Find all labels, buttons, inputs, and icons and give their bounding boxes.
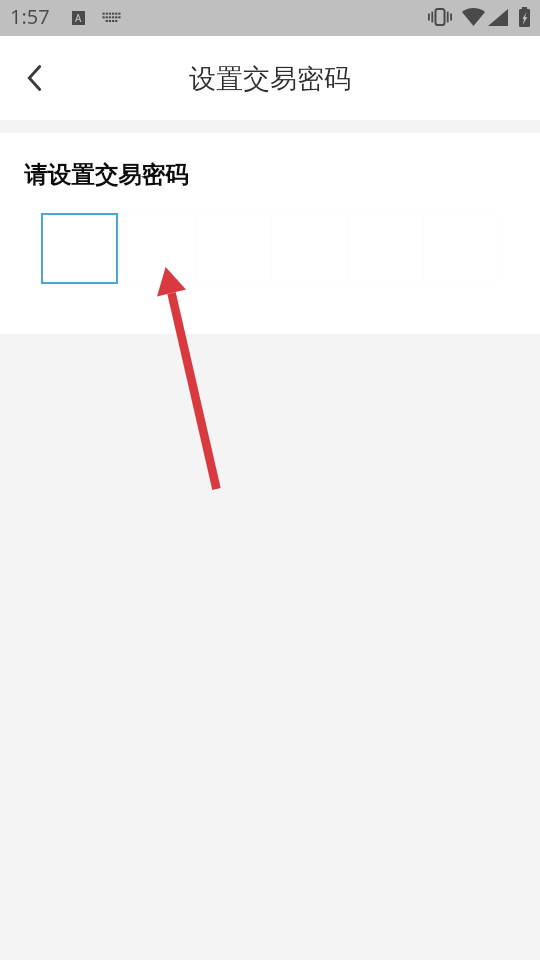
staticText: 1:57: [10, 3, 50, 30]
button[interactable]: 密码第 1 位: [41, 213, 118, 284]
staticText: 请设置交易密码: [24, 160, 189, 190]
button[interactable]: 密码第 2 位: [118, 213, 195, 284]
staticText: A: [75, 11, 82, 25]
other: 交易密码输入框: [41, 213, 499, 284]
staticText: 设置交易密码: [189, 62, 351, 96]
button[interactable]: Back: [0, 36, 62, 120]
